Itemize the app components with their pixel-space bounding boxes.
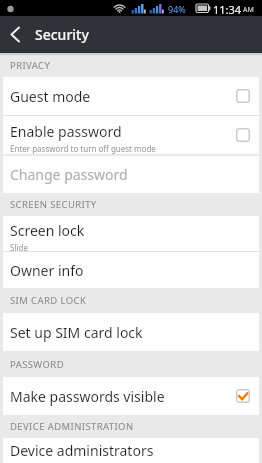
staticText: Change password [10, 165, 128, 184]
button[interactable]: Security [0, 16, 262, 53]
button[interactable]: Screen lock [3, 216, 259, 251]
staticText: Owner info [10, 261, 84, 280]
staticText: Security [35, 25, 89, 44]
staticText: Guest mode [10, 87, 91, 106]
staticText: Slide [10, 242, 28, 253]
button[interactable]: Guest mode [3, 77, 259, 115]
button[interactable]: Set up SIM card lock [3, 313, 259, 351]
staticText: Device administrators [10, 441, 154, 460]
staticText: Set up SIM card lock [10, 323, 143, 342]
staticText: Make passwords visible [10, 387, 165, 406]
staticText: 94% [168, 3, 186, 15]
button[interactable]: Change password [3, 156, 259, 193]
staticText: Screen lock [10, 221, 85, 240]
staticText: Enter password to turn off guest mode [10, 143, 156, 154]
staticText: AM [243, 5, 254, 15]
button[interactable]: Enable password [3, 116, 259, 154]
staticText: DEVICE ADMINISTRATION [10, 420, 134, 433]
button[interactable]: Owner info [3, 252, 259, 288]
button[interactable]: Device administrators [3, 438, 259, 463]
staticText: PASSWORD [10, 358, 64, 371]
staticText: PRIVACY [10, 59, 51, 72]
staticText: Enable password [10, 122, 122, 141]
staticText: SCREEN SECURITY [10, 198, 97, 211]
staticText: SIM CARD LOCK [10, 294, 87, 307]
staticText: 11:34 [213, 2, 242, 17]
button[interactable]: Make passwords visible [3, 377, 259, 415]
